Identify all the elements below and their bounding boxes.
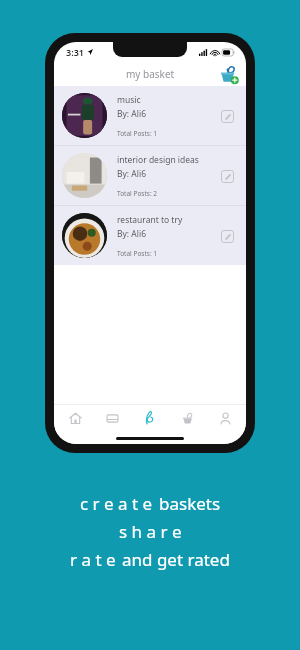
staticText: s h a r e [119,520,182,543]
button[interactable]: interior design ideas [54,146,246,205]
staticText: baskets [159,492,221,515]
staticText: Total Posts: 1 [117,249,158,258]
staticText: Total Posts: 1 [117,129,158,138]
staticText: and get rated [122,548,230,571]
button[interactable]: Create basket [218,63,240,85]
button[interactable]: Profile [208,404,242,432]
button[interactable]: Edit basket [216,225,238,247]
staticText: restaurant to try [117,214,183,226]
button[interactable]: My basket [171,404,205,432]
button[interactable]: Inbox [95,404,129,432]
staticText: r a t e [70,548,116,571]
staticText: interior design ideas [117,154,199,166]
staticText: By: Ali6 [117,228,147,240]
staticText: By: Ali6 [117,108,147,120]
button[interactable]: restaurant to try [54,206,246,265]
staticText: By: Ali6 [117,168,147,180]
staticText: music [117,94,141,106]
button[interactable]: Edit basket [216,165,238,187]
button[interactable]: music [54,86,246,145]
staticText: Total Posts: 2 [117,189,158,198]
button[interactable]: Home [58,404,92,432]
button[interactable]: Baskets [133,404,167,432]
staticText: my basket [126,67,175,81]
staticText: 3:31 [66,46,84,58]
staticText: c r e a t e [80,492,153,515]
button[interactable]: Edit basket [216,105,238,127]
